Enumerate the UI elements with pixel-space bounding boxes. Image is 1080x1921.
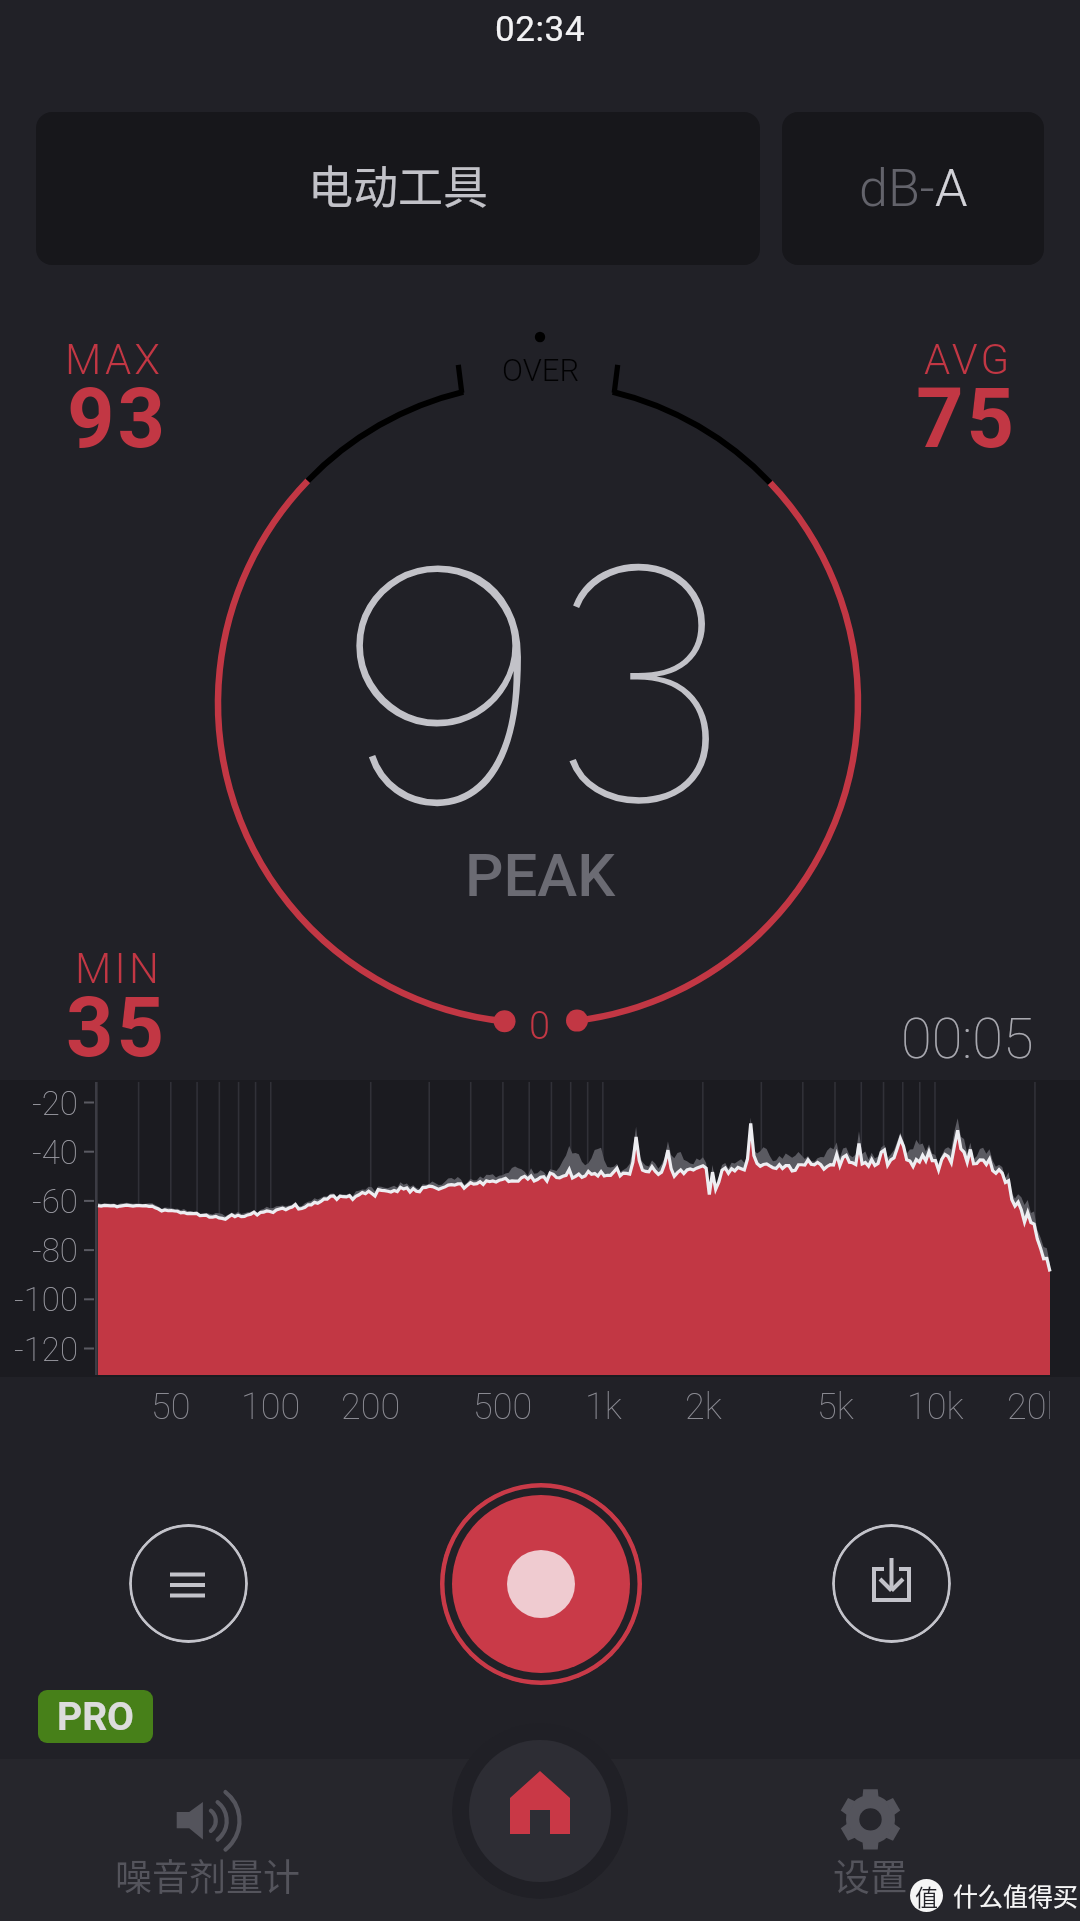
staticText: 电动工具 <box>308 152 489 217</box>
staticText: MIN <box>75 944 162 993</box>
staticText: MAX <box>65 335 164 384</box>
staticText: -40 <box>32 1133 78 1172</box>
staticText: 值 <box>915 1879 938 1912</box>
staticText: PEAK <box>465 840 616 910</box>
staticText: AVG <box>924 335 1013 384</box>
button[interactable]: Record <box>440 1483 642 1685</box>
staticText: 00:05 <box>901 1006 1034 1072</box>
staticText: 93 <box>344 443 746 833</box>
staticText: A <box>935 158 968 219</box>
button[interactable]: 噪音剂量计 <box>97 1786 317 1896</box>
staticText: OVER <box>502 352 580 388</box>
staticText: 35 <box>66 979 168 1076</box>
staticText: 20k <box>1007 1386 1050 1428</box>
staticText: -60 <box>32 1182 78 1221</box>
staticText: 93 <box>67 370 169 467</box>
button[interactable]: dB- <box>782 112 1044 265</box>
staticText: -100 <box>14 1280 78 1319</box>
staticText: 50 <box>151 1386 191 1428</box>
staticText: dB- <box>859 158 935 219</box>
staticText: PRO <box>57 1694 134 1740</box>
staticText: 200 <box>341 1386 401 1428</box>
staticText: 1k <box>585 1386 622 1428</box>
staticText: 10k <box>907 1386 964 1428</box>
staticText: 0 <box>529 1004 551 1049</box>
button[interactable]: Home <box>452 1723 628 1899</box>
staticText: 500 <box>473 1386 533 1428</box>
button[interactable]: Measurement list <box>129 1524 248 1643</box>
staticText: 噪音剂量计 <box>115 1848 300 1902</box>
staticText: 5k <box>817 1386 854 1428</box>
staticText: -120 <box>14 1330 78 1369</box>
staticText: -20 <box>32 1084 78 1123</box>
staticText: -80 <box>32 1231 78 1270</box>
staticText: 什么值得买 <box>953 1877 1079 1913</box>
button[interactable]: 电动工具 <box>36 112 760 265</box>
staticText: 75 <box>916 370 1018 467</box>
button[interactable]: 设置 <box>760 1786 980 1896</box>
button[interactable]: Save <box>832 1524 951 1643</box>
staticText: 2k <box>685 1386 722 1428</box>
staticText: 设置 <box>833 1848 907 1902</box>
staticText: 100 <box>241 1386 301 1428</box>
staticText: 02:34 <box>495 9 586 50</box>
button[interactable]: PRO <box>38 1690 153 1743</box>
